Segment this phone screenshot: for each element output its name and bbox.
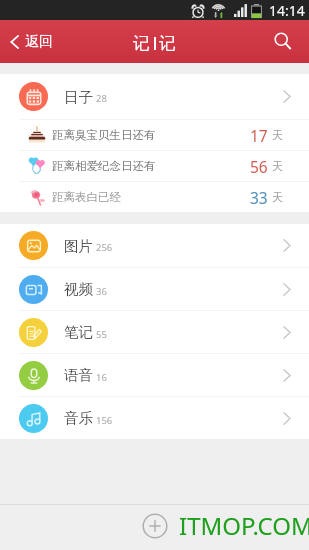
staticText: 33	[250, 187, 268, 208]
staticText: 56	[250, 156, 268, 177]
staticText: 日子	[64, 88, 93, 106]
staticText: 笔记	[64, 323, 93, 341]
staticText: 记	[133, 33, 150, 54]
staticText: 返回	[25, 33, 53, 51]
button[interactable]: 笔记	[0, 311, 309, 353]
button[interactable]: 返回	[0, 25, 67, 59]
staticText: 距离臭宝贝生日还有	[52, 128, 156, 142]
staticText: 音乐	[64, 409, 93, 427]
staticText: 天	[272, 190, 283, 204]
button[interactable]: 距离表白已经	[0, 182, 309, 212]
staticText: 256	[96, 241, 113, 254]
button[interactable]: 音乐	[0, 397, 309, 439]
staticText: 36	[96, 285, 107, 298]
staticText: 17	[250, 125, 268, 146]
staticText: 天	[272, 128, 283, 142]
staticText: 天	[272, 159, 283, 173]
staticText: 图片	[64, 237, 93, 255]
button[interactable]: 日子	[0, 74, 309, 119]
staticText: 距离表白已经	[52, 190, 121, 204]
staticText: 28	[96, 92, 107, 105]
staticText: 55	[96, 328, 107, 341]
button[interactable]: 语音	[0, 354, 309, 396]
staticText: 14:14	[269, 1, 305, 20]
staticText: 语音	[64, 366, 93, 384]
button[interactable]: 距离相爱纪念日还有	[0, 151, 309, 181]
staticText: 距离相爱纪念日还有	[52, 159, 156, 173]
button[interactable]: 距离臭宝贝生日还有	[0, 120, 309, 150]
staticText: 记	[159, 33, 176, 54]
staticText: 156	[96, 414, 113, 427]
button[interactable]: Search	[261, 25, 309, 58]
staticText: 视频	[64, 280, 93, 298]
button[interactable]: 视频	[0, 268, 309, 310]
staticText: 16	[96, 371, 107, 384]
staticText: ITMOP.COM	[179, 509, 309, 542]
button[interactable]: 图片	[0, 224, 309, 267]
